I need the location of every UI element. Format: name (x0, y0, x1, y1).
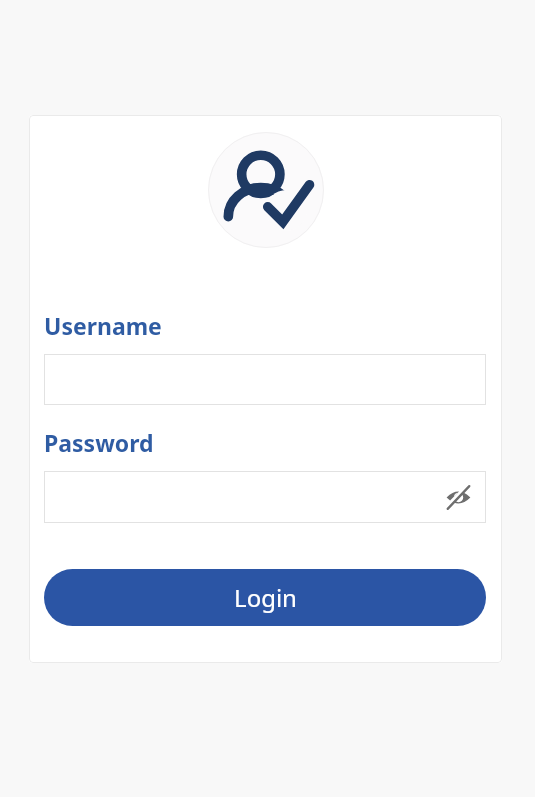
button[interactable]: Login (44, 569, 486, 626)
staticText: Login (234, 581, 297, 614)
button[interactable]: Show password (440, 479, 476, 515)
button[interactable]: Show password (44, 471, 486, 523)
staticText: Username (44, 310, 162, 341)
staticText: Password (44, 427, 154, 458)
button[interactable] (44, 354, 486, 405)
